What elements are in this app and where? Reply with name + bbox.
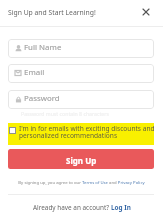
staticText: Sign Up (66, 155, 97, 166)
button[interactable]: Sign Up (8, 149, 154, 169)
staticText: personalized recommendations (19, 131, 118, 140)
staticText: Full Name (24, 42, 62, 53)
button[interactable]: Email (8, 64, 154, 83)
staticText: I'm in for emails with exciting discount… (19, 124, 155, 133)
button[interactable]: Close (139, 5, 153, 19)
staticText: Sign Up and Start Learning! (8, 8, 96, 17)
button[interactable]: Full Name (8, 39, 154, 58)
button[interactable]: Already have an account? (0, 200, 163, 214)
staticText: Password must contain 8 characters (21, 110, 109, 117)
button[interactable]: I'm in for emails with exciting discount… (8, 123, 154, 145)
staticText: Log In (111, 203, 131, 212)
staticText: Already have an account? (33, 203, 111, 212)
staticText: Password (24, 93, 60, 104)
staticText: By signing up, you agree to our Terms of… (0, 179, 163, 185)
button[interactable]: Password (8, 90, 154, 109)
staticText: Email (24, 67, 45, 78)
